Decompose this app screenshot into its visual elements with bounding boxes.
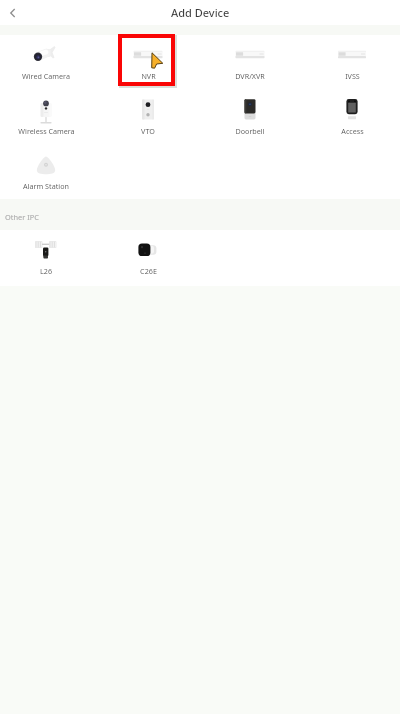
staticText: Access <box>341 126 364 136</box>
button[interactable]: DVR/XVR <box>200 35 300 90</box>
staticText: C26E <box>140 266 157 276</box>
button[interactable]: Doorbell <box>200 90 300 145</box>
staticText: DVR/XVR <box>235 71 265 81</box>
button[interactable]: L26 <box>0 230 96 285</box>
button[interactable]: C26E <box>98 230 198 285</box>
staticText: L26 <box>40 266 52 276</box>
staticText: Wireless Camera <box>18 126 75 136</box>
button[interactable]: Wireless Camera <box>0 90 96 145</box>
button[interactable]: NVR <box>98 35 198 90</box>
button[interactable]: Access <box>302 90 400 145</box>
staticText: VTO <box>141 126 155 136</box>
staticText: IVSS <box>345 71 360 81</box>
staticText: Other IPC <box>5 212 39 222</box>
button[interactable]: VTO <box>98 90 198 145</box>
button[interactable]: Alarm Station <box>0 145 96 199</box>
button[interactable]: Wired Camera <box>0 35 96 90</box>
staticText: Wired Camera <box>22 71 70 81</box>
staticText: Alarm Station <box>23 181 69 191</box>
staticText: NVR <box>141 71 156 81</box>
staticText: Doorbell <box>235 126 265 136</box>
staticText: Add Device <box>171 5 230 20</box>
button[interactable]: Back <box>0 0 26 25</box>
button[interactable]: IVSS <box>302 35 400 90</box>
